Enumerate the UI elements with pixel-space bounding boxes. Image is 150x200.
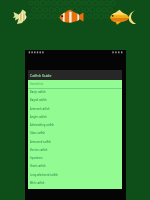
button[interactable]: Wels catfish: [28, 179, 122, 187]
staticText: Search list: [30, 82, 44, 86]
button[interactable]: Armored catfish: [28, 105, 122, 113]
staticText: Airbreathing catfish: [30, 123, 55, 127]
button[interactable]: Search list: [28, 80, 122, 88]
staticText: Long-whiskered catfish: [30, 173, 59, 177]
button[interactable]: Electric catfish: [28, 146, 122, 154]
staticText: Shark catfish: [30, 164, 46, 168]
staticText: Catfish Guide: [30, 73, 52, 78]
button[interactable]: Squeakers: [28, 154, 122, 162]
staticText: Bagrid catfish: [30, 98, 47, 102]
staticText: Angler catfish: [30, 115, 47, 119]
staticText: Wels catfish: [30, 181, 45, 185]
button[interactable]: Glass catfish: [28, 129, 122, 137]
button[interactable]: Banjo catfish: [28, 88, 122, 96]
button[interactable]: Catfish Guide: [28, 70, 122, 80]
button[interactable]: Armoured catfish: [28, 138, 122, 146]
staticText: Banjo catfish: [30, 90, 46, 94]
button[interactable]: Angler catfish: [28, 113, 122, 121]
staticText: Armoured catfish: [30, 140, 52, 144]
staticText: Electric catfish: [30, 148, 48, 152]
button[interactable]: Shark catfish: [28, 162, 122, 170]
staticText: Squeakers: [30, 156, 43, 160]
button[interactable]: Bagrid catfish: [28, 96, 122, 104]
other: Status bar: [28, 50, 123, 55]
staticText: Armored catfish: [30, 107, 50, 111]
button[interactable]: Airbreathing catfish: [28, 121, 122, 129]
button[interactable]: Long-whiskered catfish: [28, 171, 122, 179]
staticText: Glass catfish: [30, 131, 46, 135]
